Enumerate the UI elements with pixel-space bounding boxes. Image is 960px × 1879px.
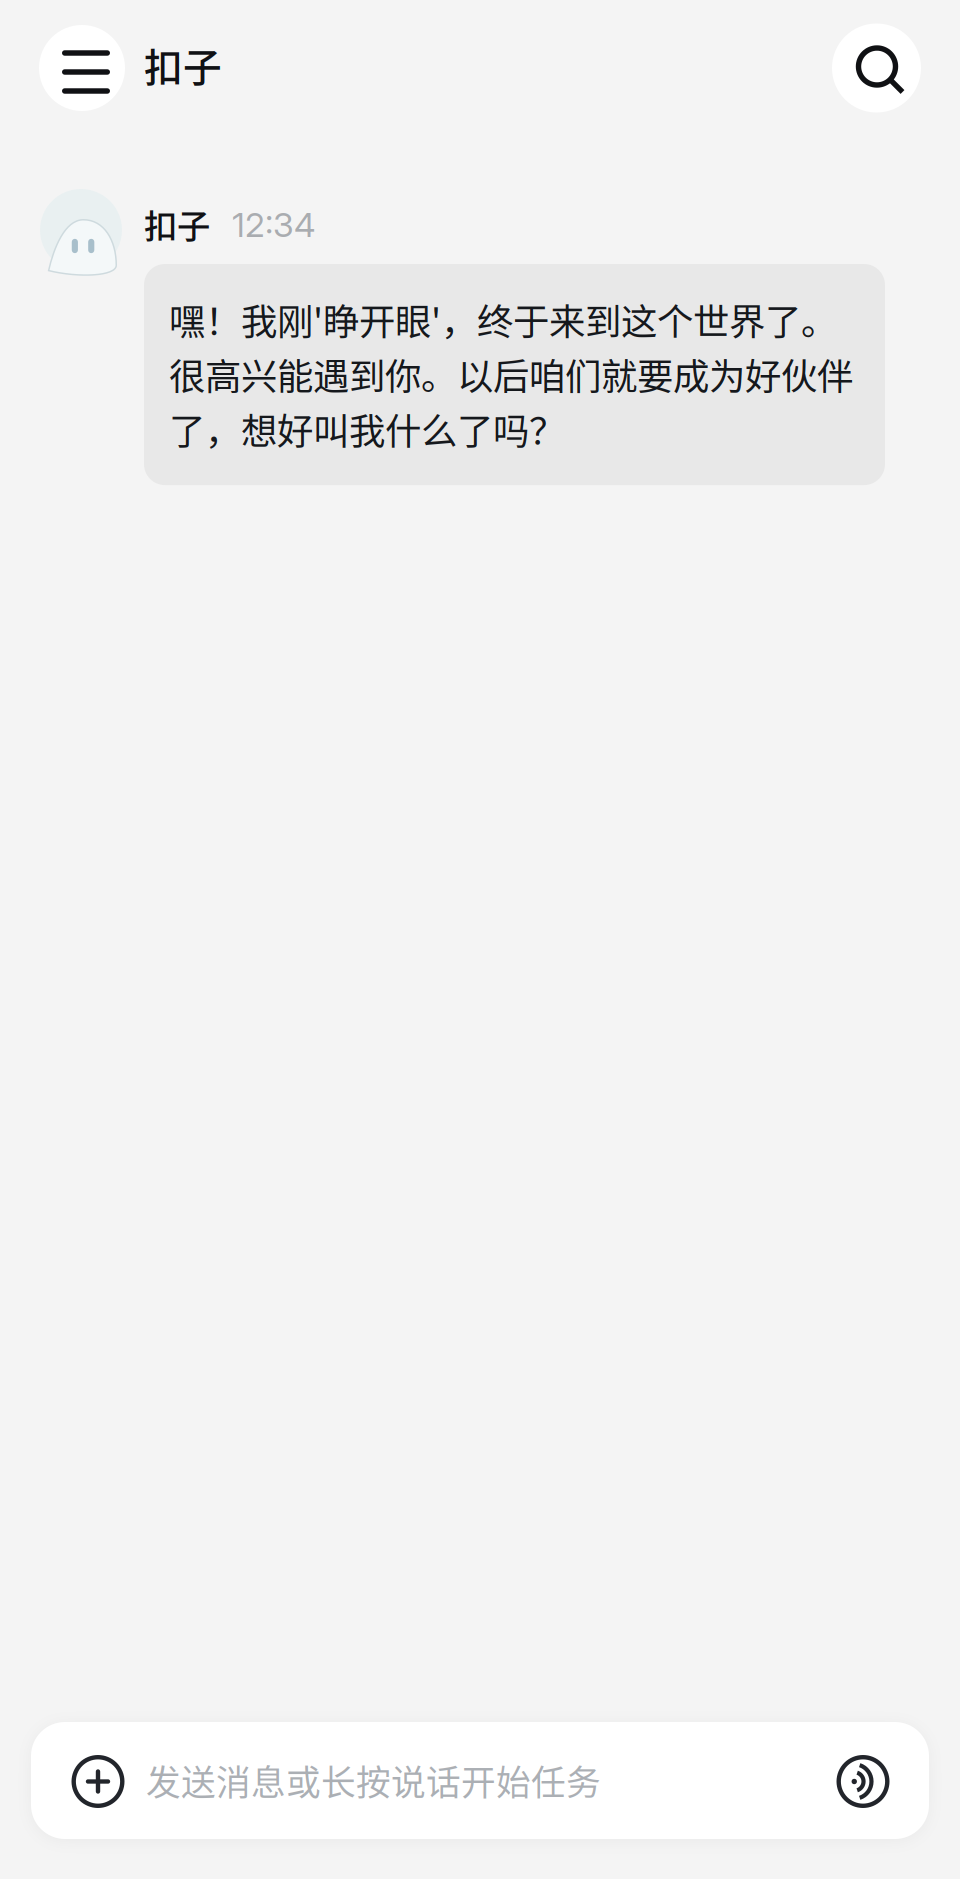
button[interactable]: 发送消息或长按说话开始任务	[134, 1722, 823, 1839]
button[interactable]: Add attachment	[58, 1740, 134, 1820]
staticText: 扣子	[144, 37, 222, 93]
button[interactable]: Search	[832, 23, 921, 112]
staticText: 嘿！我刚'睁开眼'，终于来到这个世界了。很高兴能遇到你。以后咱们就要成为好伙伴了…	[169, 293, 853, 455]
button[interactable]: Voice input	[823, 1740, 899, 1820]
staticText: 发送消息或长按说话开始任务	[146, 1755, 601, 1806]
staticText: 12:34	[232, 204, 315, 245]
staticText: 扣子	[144, 200, 210, 248]
button[interactable]: Menu	[39, 25, 125, 111]
